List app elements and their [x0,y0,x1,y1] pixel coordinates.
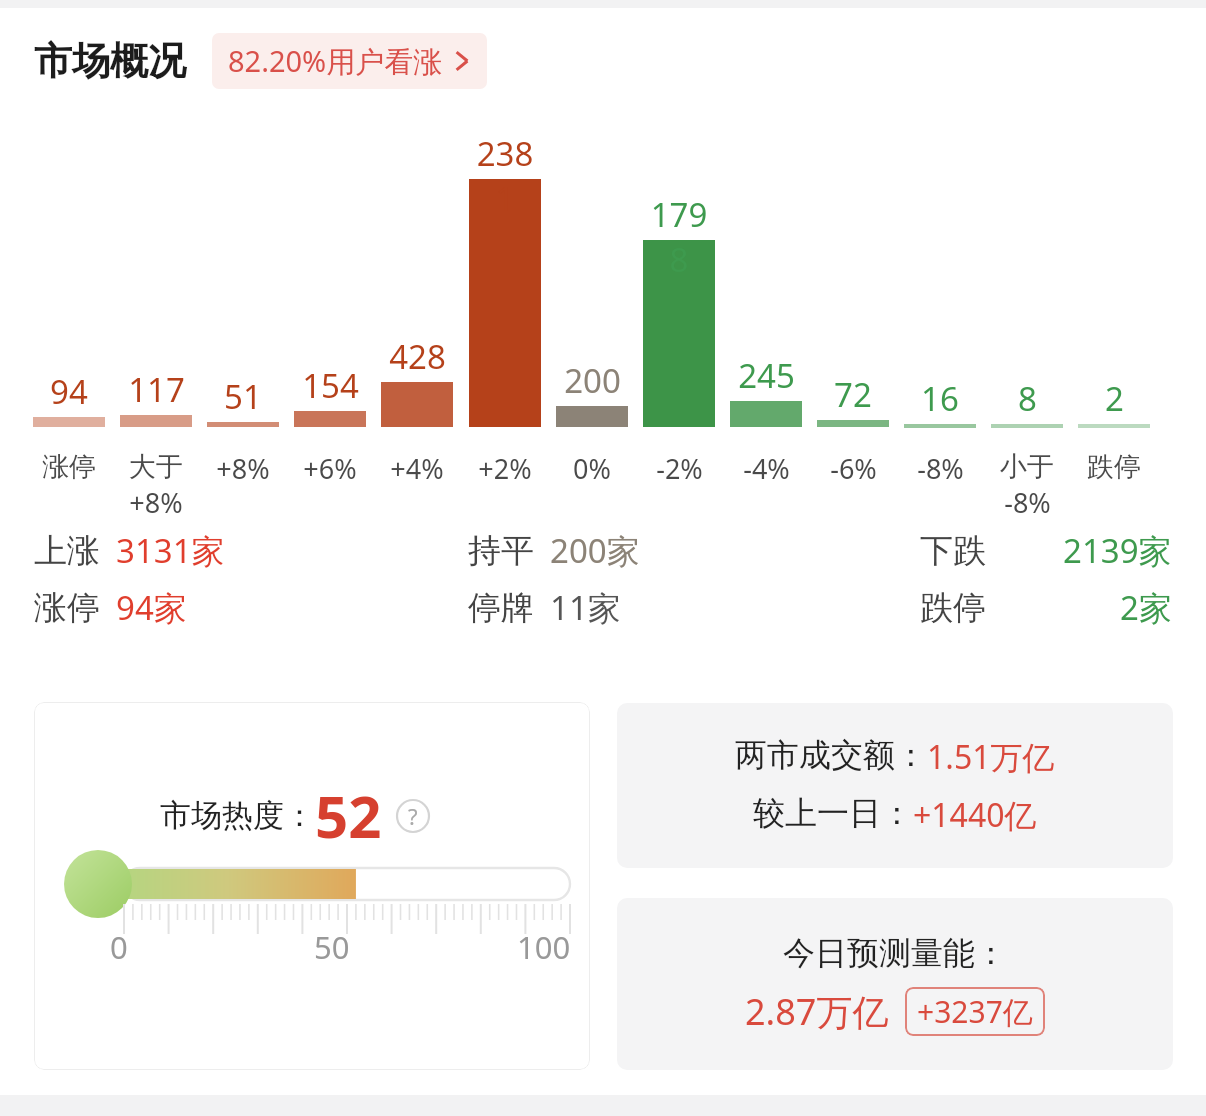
staticText: +1440亿 [913,793,1037,837]
button[interactable]: 帮助说明 [396,799,430,833]
staticText: 2 [1105,376,1124,421]
staticText: 2139家 [1063,528,1172,573]
staticText: 1.51万亿 [927,735,1055,779]
staticText: 11家 [550,585,621,630]
staticText: 154 [302,363,359,408]
staticText: 0% [573,450,611,487]
staticText: 50 [314,926,350,968]
staticText: 428 [389,334,446,379]
staticText: 94家 [116,585,187,630]
staticText: 2381 [469,131,541,221]
staticText: 100 [517,926,571,968]
staticText: 3131家 [116,528,225,573]
button[interactable]: 今日预测量能： [617,898,1173,1070]
staticText: -8% [1004,484,1051,521]
staticText: 跌停 [920,587,986,629]
staticText: 94 [50,369,88,414]
staticText: 0 [110,926,128,968]
staticText: +3237亿 [917,991,1033,1032]
staticText: 82.20%用户看涨 [228,41,443,81]
staticText: 16 [921,376,959,421]
staticText: +8% [216,450,270,487]
staticText: 小于 [1000,450,1054,484]
staticText: -6% [830,450,877,487]
button[interactable]: 市场热度： [34,702,590,1070]
staticText: 停牌 [468,587,534,629]
staticText: 上涨 [34,530,100,572]
staticText: 较上一日： [753,793,913,833]
staticText: 市场概况 [34,37,186,85]
staticText: ? [408,801,418,831]
staticText: 市场热度： [160,796,315,835]
staticText: -2% [656,450,703,487]
staticText: 跌停 [1087,450,1141,484]
staticText: 涨停 [34,587,100,629]
staticText: 200 [564,358,621,403]
staticText: 涨停 [42,450,96,484]
staticText: -4% [743,450,790,487]
staticText: 117 [128,367,185,412]
staticText: 大于 [129,450,183,484]
staticText: -8% [917,450,964,487]
staticText: 2.87万亿 [745,987,889,1036]
staticText: 1798 [643,192,715,282]
staticText: 下跌 [920,530,986,572]
staticText: 72 [834,372,872,417]
button[interactable]: 82.20%用户看涨 [212,33,487,89]
button[interactable]: 两市成交额： [617,703,1173,868]
staticText: 8 [1018,376,1037,421]
staticText: 持平 [468,530,534,572]
staticText: 245 [738,353,795,398]
staticText: +2% [478,450,532,487]
staticText: 两市成交额： [735,735,927,775]
staticText: 51 [224,374,262,419]
staticText: +8% [129,484,183,521]
staticText: 200家 [550,528,640,573]
staticText: 今日预测量能： [783,933,1007,973]
staticText: +6% [303,450,357,487]
staticText: +4% [390,450,444,487]
staticText: 2家 [1120,585,1172,630]
staticText: 52 [315,776,382,855]
